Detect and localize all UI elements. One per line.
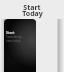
- staticText: Start: [6, 30, 15, 35]
- staticText: new today: [6, 39, 21, 43]
- staticText: Today: [22, 9, 43, 19]
- staticText: Something: [6, 35, 22, 39]
- staticText: Start: [23, 3, 41, 13]
- button[interactable]: Start: [4, 19, 36, 72]
